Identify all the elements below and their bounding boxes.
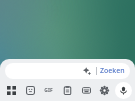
button[interactable]: AI assist [5, 63, 130, 79]
staticText: GIF [44, 87, 53, 94]
button[interactable]: Zoeken [100, 66, 125, 76]
staticText: Zoeken [100, 66, 125, 76]
button[interactable]: Translate [78, 82, 95, 99]
button[interactable]: Apps [3, 82, 20, 99]
button[interactable]: Clipboard [59, 82, 76, 99]
button[interactable]: Settings [96, 82, 113, 99]
button[interactable]: Stickers [22, 82, 39, 99]
button[interactable]: AI assist [81, 65, 93, 77]
button[interactable]: Voice input [115, 82, 132, 99]
button[interactable]: GIF [40, 82, 57, 99]
